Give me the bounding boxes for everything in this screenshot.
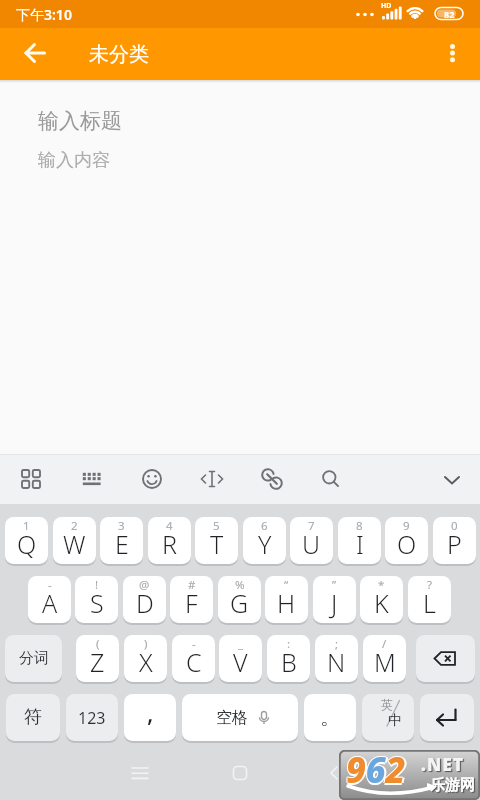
button[interactable]: 9 (385, 517, 428, 564)
staticText: ) (144, 636, 148, 652)
button[interactable]: ” (313, 576, 356, 623)
staticText: 符 (24, 706, 42, 729)
staticText: ? (427, 577, 432, 593)
staticText: 962 (345, 750, 405, 794)
staticText: 输入内容 (38, 149, 110, 172)
staticText: # (188, 577, 196, 593)
button[interactable]: - (172, 635, 215, 682)
staticText: @ (139, 577, 150, 593)
button[interactable] (11, 459, 51, 499)
staticText: 82 (444, 8, 455, 20)
button[interactable] (72, 459, 112, 499)
button[interactable]: 4 (148, 517, 191, 564)
button[interactable]: 0 (433, 517, 476, 564)
staticText: Z (90, 645, 105, 679)
button[interactable]: ! (75, 576, 118, 623)
staticText: P (447, 527, 462, 561)
staticText: 分词 (19, 649, 49, 668)
staticText: 962 (346, 750, 406, 796)
staticText: ” (332, 577, 337, 593)
button[interactable] (252, 459, 292, 499)
button[interactable]: 7 (290, 517, 333, 564)
staticText: V (233, 645, 248, 679)
button[interactable]: 8 (338, 517, 381, 564)
staticText: 3 (118, 518, 125, 534)
button[interactable]: 2 (53, 517, 96, 564)
button[interactable]: - (28, 576, 71, 623)
staticText: 8 (356, 518, 363, 534)
staticText: S (90, 586, 104, 620)
staticText: O (397, 527, 417, 561)
button[interactable] (132, 459, 172, 499)
staticText: 123 (78, 707, 106, 729)
button[interactable]: 3 (100, 517, 143, 564)
staticText: I (356, 527, 364, 561)
staticText: L (423, 586, 436, 620)
staticText: ! (95, 577, 99, 593)
button[interactable]: 5 (195, 517, 238, 564)
button[interactable]: @ (123, 576, 166, 623)
staticText: 5 (213, 518, 220, 534)
button[interactable] (311, 459, 351, 499)
staticText: R (162, 527, 177, 561)
button[interactable]: / (363, 635, 406, 682)
button[interactable]: ; (315, 635, 358, 682)
button[interactable]: % (218, 576, 261, 623)
staticText: , (147, 696, 154, 729)
staticText: “ (284, 577, 289, 593)
staticText: B (281, 645, 297, 679)
button[interactable] (416, 635, 475, 682)
button[interactable]: 。 (304, 694, 356, 741)
staticText: Q (17, 527, 37, 561)
button[interactable]: ( (76, 635, 119, 682)
button[interactable] (192, 459, 232, 499)
staticText: N (327, 645, 346, 679)
staticText: K (374, 586, 389, 620)
staticText: : (287, 636, 291, 652)
staticText: * (378, 577, 385, 593)
staticText: 9 (403, 518, 410, 534)
button[interactable]: 英 (362, 694, 414, 741)
button[interactable]: 6 (243, 517, 286, 564)
staticText: 6 (261, 518, 268, 534)
staticText: A (42, 586, 58, 620)
button[interactable] (13, 32, 57, 76)
staticText: 中 (388, 712, 402, 730)
staticText: - (48, 577, 52, 593)
button[interactable]: ? (408, 576, 451, 623)
button[interactable]: # (170, 576, 213, 623)
button[interactable] (432, 32, 472, 72)
button[interactable]: 123 (66, 694, 118, 741)
staticText: 4 (166, 518, 173, 534)
staticText: 。 (320, 705, 340, 730)
staticText: W (63, 527, 86, 561)
button[interactable]: _ (219, 635, 262, 682)
button[interactable]: 符 (6, 694, 60, 741)
staticText: F (185, 586, 198, 620)
staticText: % (235, 577, 245, 593)
button[interactable] (432, 460, 472, 500)
button[interactable] (323, 756, 357, 790)
button[interactable] (123, 756, 157, 790)
staticText: 1 (23, 518, 30, 534)
staticText: U (302, 527, 321, 561)
staticText: G (230, 586, 249, 620)
button[interactable]: : (267, 635, 310, 682)
button[interactable] (420, 694, 474, 741)
button[interactable]: ) (124, 635, 167, 682)
staticText: 962 (346, 750, 406, 793)
staticText: 7 (308, 518, 315, 534)
button[interactable]: 分词 (5, 635, 62, 682)
button[interactable] (223, 756, 257, 790)
staticText: J (331, 586, 338, 620)
staticText: 962 (348, 750, 408, 794)
staticText: 下午3:10 (16, 5, 72, 24)
button[interactable]: * (360, 576, 403, 623)
button[interactable]: “ (265, 576, 308, 623)
button[interactable]: 空格 (182, 694, 298, 741)
staticText: H (277, 586, 296, 620)
button[interactable]: 1 (5, 517, 48, 564)
staticText: 乐游网 (430, 776, 475, 795)
button[interactable]: , (124, 694, 176, 741)
staticText: .NET (421, 753, 465, 776)
